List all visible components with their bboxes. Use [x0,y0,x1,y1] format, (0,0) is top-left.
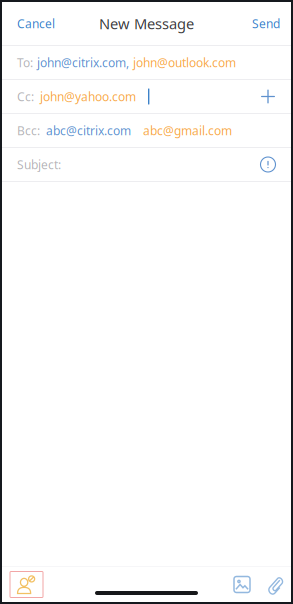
staticText: Cancel [17,15,55,31]
staticText: Bcc: [17,122,40,138]
button[interactable]: Send [252,15,280,31]
button[interactable]: Priority [257,153,279,175]
staticText: Subject: [17,156,61,172]
button[interactable]: Blocked contact [10,571,43,597]
button[interactable]: Cancel [17,15,55,31]
staticText: abc@gmail.com [143,122,232,138]
button[interactable]: Attach file [267,575,283,593]
staticText: john@outlook.com [133,54,236,70]
button[interactable]: Insert photo [234,576,250,592]
staticText: To: [17,54,33,70]
staticText: New Message [99,14,194,33]
staticText: Send [252,15,280,31]
button[interactable]: Add recipient [257,85,279,107]
staticText: john@yahoo.com [40,88,136,104]
staticText: abc@citrix.com [46,122,131,138]
staticText: john@citrix.com, [37,54,129,70]
staticText: Cc: [17,88,34,104]
